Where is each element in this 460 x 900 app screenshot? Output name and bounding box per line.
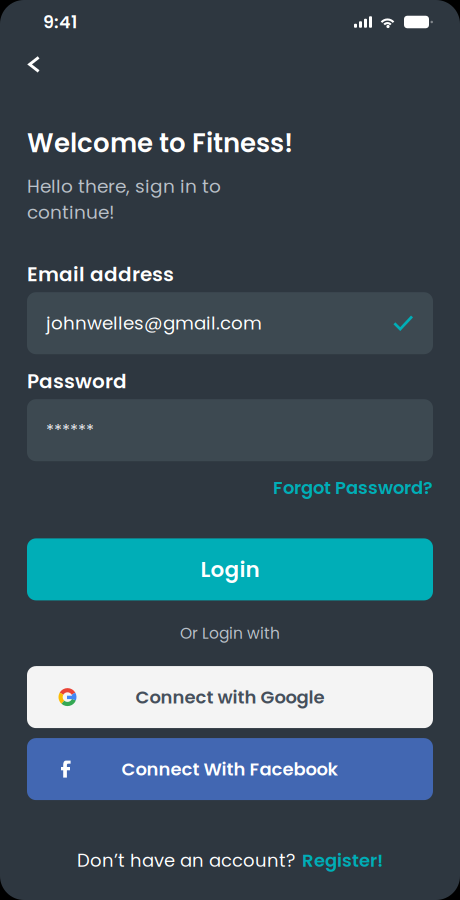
staticText: Or Login with — [180, 622, 280, 644]
button[interactable]: Register! — [302, 848, 383, 873]
staticText: johnwelles@gmail.com — [46, 310, 262, 336]
staticText: ****** — [46, 419, 94, 442]
staticText: Connect with Google — [135, 684, 324, 710]
button[interactable]: Forgot Password? — [273, 475, 433, 500]
button[interactable]: Back — [0, 44, 63, 83]
staticText: Don’t have an account? — [77, 848, 295, 873]
staticText: Register! — [302, 848, 383, 873]
button[interactable]: Connect With Facebook — [27, 738, 433, 800]
staticText: Hello there, sign in to continue! — [27, 173, 221, 225]
button[interactable]: Connect with Google — [27, 666, 433, 728]
staticText: Welcome to Fitness! — [27, 125, 293, 161]
staticText: Forgot Password? — [273, 475, 433, 500]
button[interactable]: Login — [27, 538, 433, 600]
staticText: 9:41 — [43, 10, 77, 34]
staticText: Email address — [27, 260, 174, 288]
staticText: Connect With Facebook — [121, 756, 338, 782]
staticText: Password — [27, 367, 127, 395]
staticText: Login — [200, 554, 259, 584]
